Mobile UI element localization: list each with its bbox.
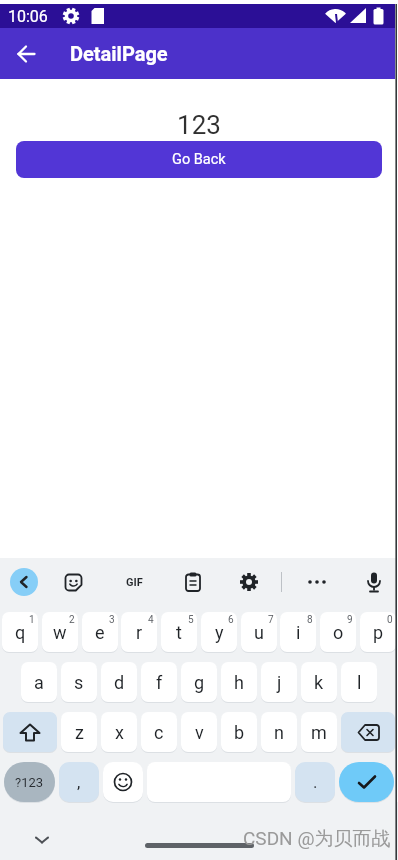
staticText: q <box>15 622 26 643</box>
staticText: h <box>234 672 244 693</box>
button[interactable]: , <box>59 762 99 802</box>
button[interactable] <box>61 570 85 594</box>
staticText: 4 <box>148 614 154 626</box>
staticText: ?123 <box>15 775 44 790</box>
staticText: r <box>136 622 143 643</box>
staticText: g <box>194 672 205 693</box>
button[interactable]: i <box>280 612 316 652</box>
staticText: 7 <box>268 614 274 626</box>
staticText: z <box>75 722 84 743</box>
staticText: j <box>277 672 282 693</box>
button[interactable]: s <box>61 662 97 702</box>
button[interactable]: z <box>61 712 97 752</box>
button[interactable]: k <box>301 662 337 702</box>
button[interactable] <box>18 46 35 62</box>
button[interactable]: t <box>161 612 197 652</box>
button[interactable]: o <box>320 612 356 652</box>
staticText: b <box>234 722 245 743</box>
staticText: l <box>357 672 362 693</box>
staticText: w <box>53 622 67 643</box>
button[interactable]: f <box>141 662 177 702</box>
staticText: t <box>176 622 182 643</box>
staticText: 5 <box>188 614 194 626</box>
button[interactable]: q <box>2 612 38 652</box>
button[interactable]: j <box>261 662 297 702</box>
staticText: 9 <box>347 614 353 626</box>
button[interactable]: r <box>121 612 157 652</box>
staticText: n <box>274 722 284 743</box>
staticText: k <box>314 672 324 693</box>
button[interactable]: b <box>221 712 257 752</box>
button[interactable]: w <box>42 612 78 652</box>
button[interactable]: p <box>360 612 396 652</box>
staticText: f <box>156 672 163 693</box>
button[interactable]: n <box>261 712 297 752</box>
staticText: 0 <box>387 614 393 626</box>
button[interactable]: GIF <box>122 570 146 594</box>
button[interactable]: x <box>101 712 137 752</box>
button[interactable]: e <box>82 612 118 652</box>
staticText: e <box>95 622 105 643</box>
staticText: CSDN @为贝而战 <box>243 827 391 851</box>
staticText: . <box>313 772 318 792</box>
button[interactable] <box>103 762 143 802</box>
staticText: 6 <box>228 614 234 626</box>
staticText: v <box>195 722 204 743</box>
staticText: s <box>74 672 84 693</box>
button[interactable] <box>341 712 395 752</box>
staticText: 1 <box>29 614 35 626</box>
button[interactable] <box>237 570 261 594</box>
staticText: x <box>115 722 124 743</box>
staticText: , <box>77 772 81 792</box>
staticText: y <box>215 622 224 643</box>
button[interactable]: y <box>201 612 237 652</box>
button[interactable] <box>362 570 386 594</box>
button[interactable] <box>339 762 394 802</box>
button[interactable]: u <box>241 612 277 652</box>
button[interactable] <box>34 836 50 844</box>
button[interactable]: g <box>181 662 217 702</box>
button[interactable]: d <box>101 662 137 702</box>
button[interactable]: m <box>301 712 337 752</box>
button[interactable]: v <box>181 712 217 752</box>
button[interactable]: Go Back <box>16 141 382 178</box>
button[interactable] <box>305 570 329 594</box>
staticText: 10:06 <box>8 7 48 26</box>
button[interactable] <box>181 570 205 594</box>
staticText: c <box>154 722 164 743</box>
button[interactable]: ?123 <box>4 762 55 802</box>
button[interactable] <box>3 712 57 752</box>
button[interactable]: l <box>341 662 377 702</box>
staticText: d <box>114 672 125 693</box>
button[interactable]: h <box>221 662 257 702</box>
staticText: p <box>373 622 384 643</box>
staticText: 3 <box>109 614 115 626</box>
staticText: 8 <box>307 614 313 626</box>
staticText: DetailPage <box>70 42 168 65</box>
staticText: a <box>34 672 44 693</box>
staticText: Go Back <box>172 151 226 168</box>
staticText: o <box>333 622 344 643</box>
button[interactable] <box>10 568 38 596</box>
button[interactable]: . <box>295 762 335 802</box>
staticText: i <box>296 622 301 643</box>
button[interactable]: a <box>21 662 57 702</box>
button[interactable]: c <box>141 712 177 752</box>
staticText: u <box>254 622 264 643</box>
staticText: 123 <box>177 110 221 136</box>
staticText: GIF <box>126 576 143 589</box>
staticText: m <box>311 722 327 743</box>
staticText: 2 <box>69 614 75 626</box>
